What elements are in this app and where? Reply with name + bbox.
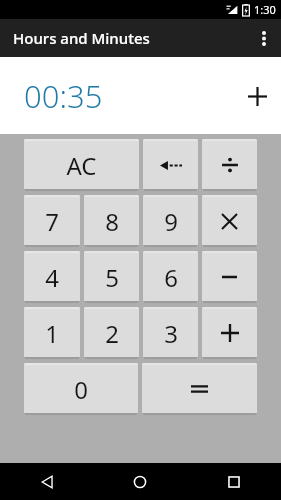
button[interactable]: Backspace (143, 139, 198, 191)
staticText: 1:30 (254, 2, 276, 17)
button[interactable]: Home (93, 463, 187, 500)
button[interactable]: 2 (84, 307, 139, 359)
button[interactable]: AC (24, 139, 139, 191)
button[interactable]: Add (233, 72, 281, 120)
button[interactable]: More options (247, 19, 281, 57)
staticText: 7 (45, 205, 59, 238)
staticText: 2 (105, 317, 119, 350)
button[interactable]: Minus (202, 251, 257, 303)
button[interactable]: 5 (84, 251, 139, 303)
staticText: 00:35 (24, 75, 103, 117)
staticText: Hours and Minutes (13, 28, 150, 48)
button[interactable]: 0 (24, 363, 138, 415)
button[interactable]: 3 (143, 307, 198, 359)
button[interactable]: 7 (24, 195, 80, 247)
staticText: 4 (45, 261, 59, 294)
button[interactable]: Equals (142, 363, 257, 415)
button[interactable]: Divide (202, 139, 257, 191)
button[interactable]: Plus (202, 307, 257, 359)
staticText: 3 (164, 317, 178, 350)
staticText: 6 (164, 261, 178, 294)
button[interactable]: 6 (143, 251, 198, 303)
button[interactable]: 4 (24, 251, 80, 303)
staticText: 9 (164, 205, 178, 238)
staticText: 8 (105, 205, 119, 238)
button[interactable]: 8 (84, 195, 139, 247)
button[interactable]: 1 (24, 307, 80, 359)
staticText: AC (66, 149, 97, 182)
button[interactable]: Multiply (202, 195, 257, 247)
button[interactable]: 9 (143, 195, 198, 247)
staticText: 0 (74, 373, 88, 406)
staticText: 1 (45, 317, 59, 350)
button[interactable]: Back (0, 463, 93, 500)
button[interactable]: Recents (187, 463, 281, 500)
staticText: 5 (105, 261, 119, 294)
